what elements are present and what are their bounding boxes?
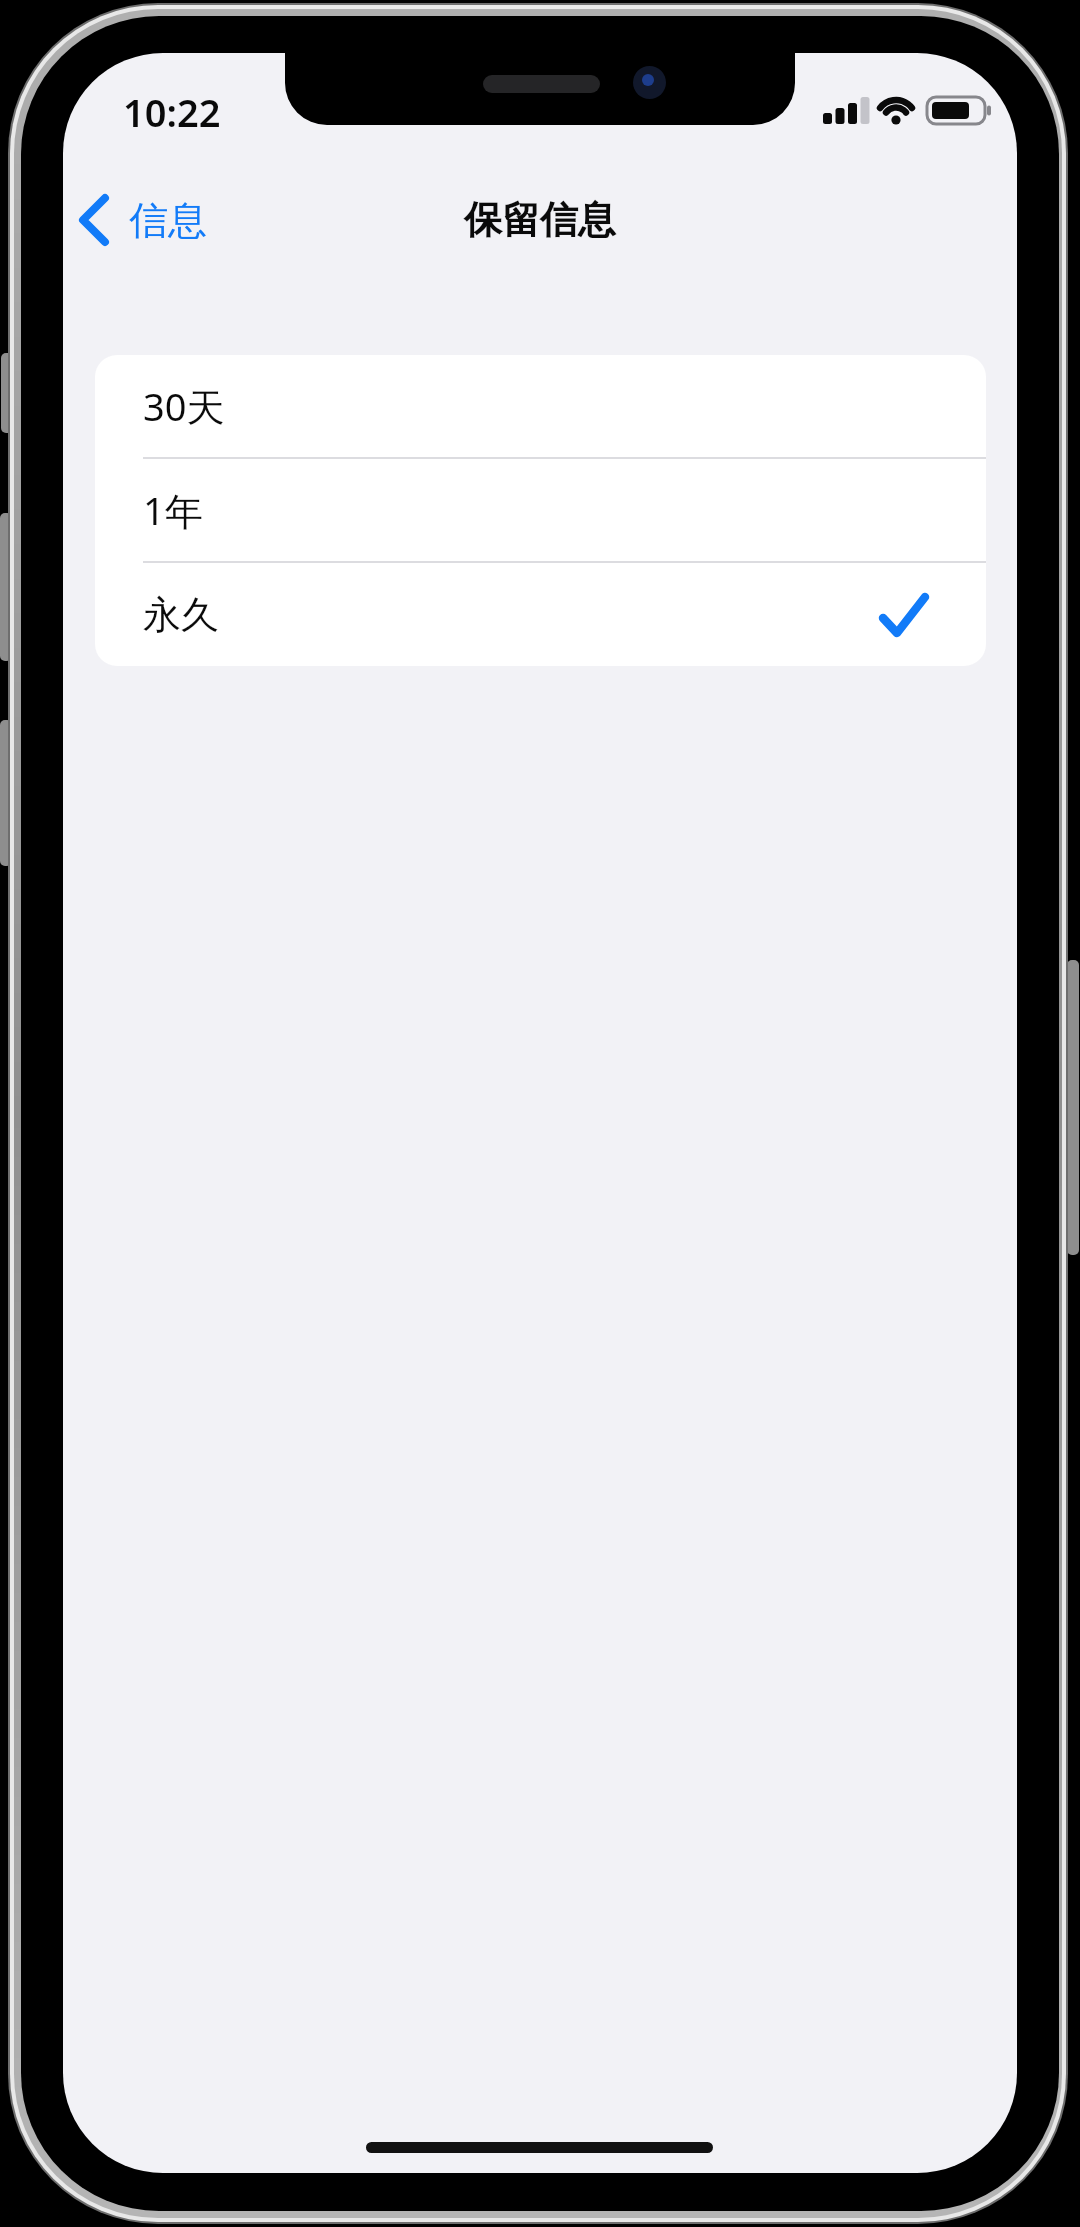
button[interactable]: 永久 bbox=[95, 563, 986, 666]
staticText: 信息 bbox=[129, 196, 207, 245]
staticText: 10:22 bbox=[123, 86, 221, 136]
staticText: 1年 bbox=[143, 484, 203, 536]
staticText: 永久 bbox=[143, 591, 219, 639]
button[interactable]: 1年 bbox=[95, 459, 986, 561]
button[interactable]: 信息 bbox=[77, 193, 207, 247]
staticText: 30天 bbox=[143, 380, 225, 432]
staticText: 保留信息 bbox=[464, 196, 616, 244]
button[interactable]: 30天 bbox=[95, 355, 986, 457]
